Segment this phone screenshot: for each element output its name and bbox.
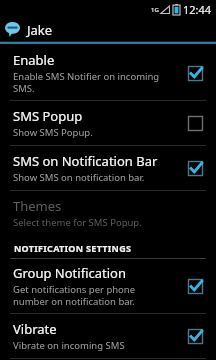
staticText: 12:44 <box>183 2 212 17</box>
staticText: Themes <box>13 197 62 215</box>
staticText: Show SMS on notification bar. <box>13 171 145 184</box>
button[interactable]: SMS on Notification Bar <box>0 146 216 190</box>
staticText: Enable SMS Notifier on incoming SMS. <box>13 70 160 95</box>
button[interactable]: Jake <box>0 18 216 41</box>
button[interactable]: Enable <box>0 46 216 100</box>
staticText: Vibrate <box>13 320 57 338</box>
staticText: Jake <box>27 21 53 39</box>
staticText: NOTIFICATION SETTINGS <box>14 242 132 254</box>
staticText: Vibrate on incoming SMS <box>13 339 125 352</box>
staticText: Show SMS Popup. <box>13 126 93 139</box>
staticText: SMS on Notification Bar <box>13 152 158 170</box>
button[interactable]: Themes <box>0 191 216 233</box>
staticText: 1G <box>151 6 159 14</box>
staticText: Get notifications per phone number on no… <box>13 283 136 308</box>
staticText: SMS Popup <box>13 107 83 125</box>
button[interactable]: Group Notification <box>0 259 216 313</box>
staticText: Select theme for SMS Popup. <box>13 216 142 229</box>
staticText: Enable <box>13 51 55 69</box>
staticText: Group Notification <box>13 264 126 282</box>
button[interactable]: Vibrate <box>0 314 216 358</box>
button[interactable]: SMS Popup <box>0 101 216 145</box>
